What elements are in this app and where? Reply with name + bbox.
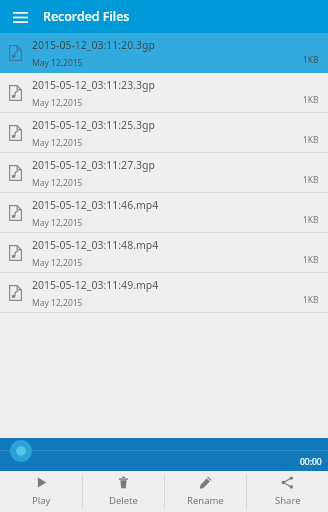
- staticText: May 12,2015: [32, 177, 83, 189]
- staticText: May 12,2015: [32, 297, 83, 309]
- staticText: 1KB: [303, 254, 319, 266]
- staticText: 2015-05-12_03:11:25.3gp: [32, 118, 155, 132]
- button[interactable]: Rename: [165, 471, 246, 512]
- staticText: 1KB: [303, 294, 319, 306]
- button[interactable]: Share: [247, 471, 328, 512]
- staticText: Rename: [187, 494, 224, 507]
- staticText: 2015-05-12_03:11:46.mp4: [32, 198, 159, 212]
- staticText: 2015-05-12_03:11:48.mp4: [32, 238, 159, 252]
- staticText: May 12,2015: [32, 257, 83, 269]
- staticText: May 12,2015: [32, 57, 83, 69]
- button[interactable]: 2015-05-12_03:11:46.mp4: [0, 193, 328, 233]
- staticText: 1KB: [303, 174, 319, 186]
- button[interactable]: Playback position: [0, 438, 328, 471]
- button[interactable]: 2015-05-12_03:11:27.3gp: [0, 153, 328, 193]
- staticText: 1KB: [303, 54, 319, 66]
- button[interactable]: 2015-05-12_03:11:48.mp4: [0, 233, 328, 273]
- button[interactable]: 2015-05-12_03:11:23.3gp: [0, 73, 328, 113]
- button[interactable]: Delete: [83, 471, 164, 512]
- button[interactable]: Open navigation menu: [8, 5, 32, 29]
- staticText: Delete: [109, 494, 138, 507]
- staticText: 2015-05-12_03:11:23.3gp: [32, 78, 155, 92]
- button[interactable]: Play: [0, 471, 82, 512]
- staticText: 2015-05-12_03:11:49.mp4: [32, 278, 159, 292]
- button[interactable]: 2015-05-12_03:11:49.mp4: [0, 273, 328, 313]
- staticText: Recorded Files: [43, 8, 130, 25]
- staticText: 2015-05-12_03:11:27.3gp: [32, 158, 155, 172]
- staticText: 2015-05-12_03:11:20.3gp: [32, 38, 155, 52]
- staticText: May 12,2015: [32, 217, 83, 229]
- staticText: 1KB: [303, 134, 319, 146]
- staticText: Play: [32, 494, 51, 507]
- button[interactable]: 2015-05-12_03:11:25.3gp: [0, 113, 328, 153]
- button[interactable]: 2015-05-12_03:11:20.3gp: [0, 33, 328, 73]
- staticText: 1KB: [303, 94, 319, 106]
- staticText: May 12,2015: [32, 137, 83, 149]
- staticText: Share: [275, 494, 301, 507]
- staticText: 00:00: [300, 456, 322, 468]
- staticText: May 12,2015: [32, 97, 83, 109]
- staticText: 1KB: [303, 214, 319, 226]
